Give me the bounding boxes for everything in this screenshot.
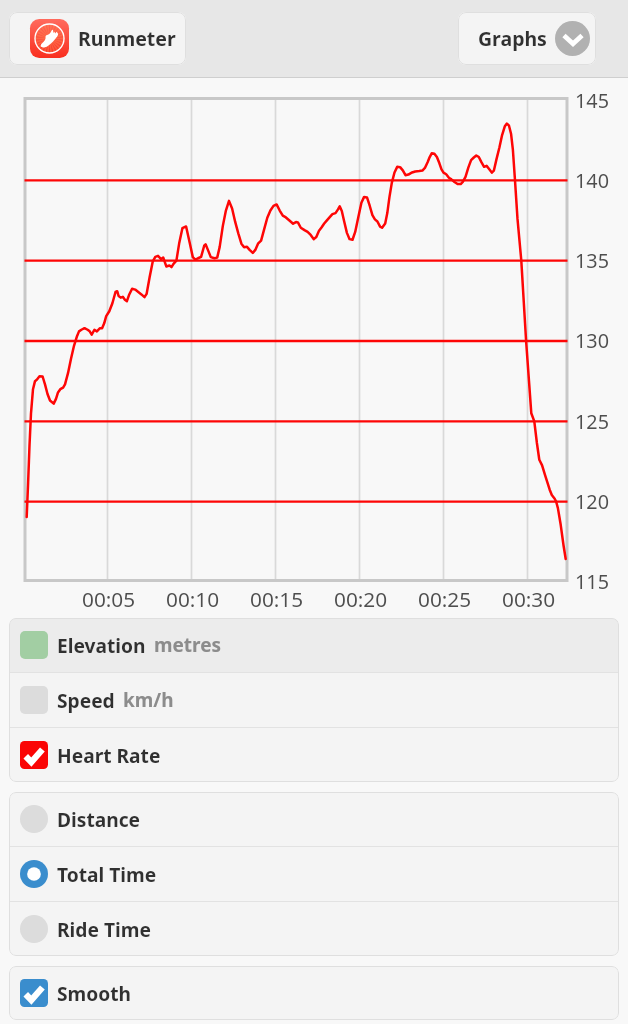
staticText: Runmeter: [78, 25, 176, 52]
staticText: 00:30: [502, 585, 556, 613]
staticText: 125: [575, 408, 609, 435]
button[interactable]: Distance: [9, 792, 619, 846]
staticText: Elevation: [57, 632, 146, 658]
staticText: 135: [575, 247, 609, 274]
button[interactable]: Ride Time: [9, 902, 619, 956]
button[interactable]: Total Time: [9, 847, 619, 901]
staticText: Distance: [57, 806, 141, 832]
staticText: metres: [154, 632, 222, 658]
staticText: Graphs: [478, 25, 547, 52]
staticText: 130: [575, 327, 609, 354]
staticText: 115: [575, 568, 609, 595]
staticText: 00:10: [166, 585, 220, 613]
staticText: 00:15: [250, 585, 304, 613]
staticText: 00:25: [418, 585, 472, 613]
button[interactable]: Elevation: [9, 618, 619, 672]
staticText: Total Time: [57, 861, 157, 887]
button[interactable]: Graphs: [458, 12, 596, 65]
staticText: 140: [575, 167, 609, 194]
button[interactable]: Smooth: [9, 966, 619, 1020]
staticText: 120: [575, 488, 609, 515]
staticText: 00:20: [334, 585, 388, 613]
button[interactable]: Speed: [9, 673, 619, 727]
staticText: Heart Rate: [57, 742, 161, 768]
staticText: km/h: [123, 687, 174, 713]
staticText: Smooth: [57, 980, 132, 1006]
staticText: Ride Time: [57, 916, 151, 942]
staticText: 00:05: [82, 585, 136, 613]
button[interactable]: Heart Rate: [9, 728, 619, 782]
button[interactable]: Expand graphs menu: [555, 21, 590, 56]
staticText: 145: [575, 87, 609, 114]
button[interactable]: Runmeter: [9, 12, 186, 65]
staticText: Speed: [57, 687, 115, 713]
